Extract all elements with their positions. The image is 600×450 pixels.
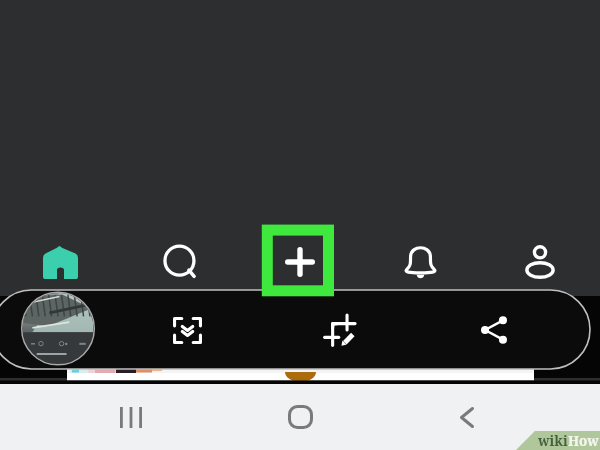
staticText: wiki <box>538 432 568 450</box>
staticText: How <box>568 432 599 450</box>
button[interactable]: Home <box>274 391 326 443</box>
button[interactable]: Crop and draw <box>312 304 368 356</box>
button[interactable]: Back <box>441 391 493 443</box>
button[interactable]: Home <box>11 231 109 293</box>
button[interactable]: Scroll capture <box>159 304 215 356</box>
button[interactable]: Search <box>131 231 229 293</box>
button[interactable]: Screenshot preview <box>18 289 98 369</box>
button[interactable]: Share <box>466 304 522 356</box>
button[interactable]: Notifications <box>371 231 469 293</box>
button[interactable]: Recent apps <box>105 391 157 443</box>
button[interactable]: Profile <box>491 231 589 293</box>
button[interactable]: Create new post <box>251 231 349 293</box>
